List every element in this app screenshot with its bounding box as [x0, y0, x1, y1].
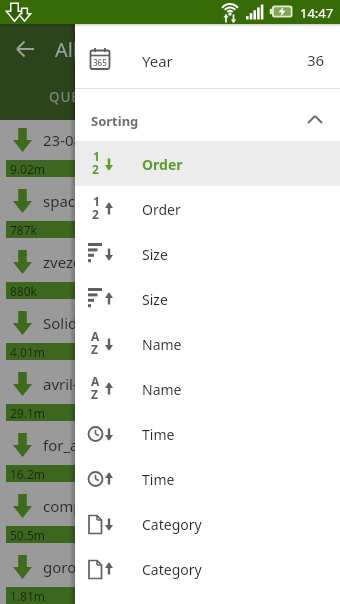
staticText: Z — [91, 341, 98, 357]
staticText: 1 — [93, 148, 100, 164]
staticText: Size — [142, 245, 168, 264]
staticText: Category — [142, 515, 202, 534]
staticText: avril-lavig — [43, 374, 111, 394]
staticText: compilatio — [43, 496, 118, 516]
staticText: Category — [142, 560, 202, 579]
staticText: 787k — [10, 222, 38, 238]
staticText: Size — [142, 290, 168, 309]
button[interactable]: 23-08-2015 — [0, 120, 340, 181]
button[interactable]: zvezda_201 — [0, 242, 340, 303]
staticText: Name — [142, 380, 182, 399]
button[interactable]: Size — [75, 276, 340, 321]
staticText: Order — [142, 155, 183, 174]
staticText: A — [91, 328, 100, 344]
button[interactable]: SolidFiles — [0, 303, 340, 364]
staticText: 365 — [93, 57, 107, 68]
staticText: 2 — [92, 206, 99, 222]
button[interactable]: for_a_reas — [0, 425, 340, 486]
staticText: 50.5m — [10, 527, 46, 543]
button[interactable]: avril-lavig — [0, 364, 340, 425]
button[interactable]: gorod_312 — [0, 547, 340, 604]
button[interactable]: 1 — [75, 186, 340, 231]
button[interactable]: 1 — [75, 141, 340, 186]
button[interactable]: A — [75, 321, 340, 366]
staticText: 16.2m — [10, 466, 46, 482]
button[interactable]: Category — [75, 546, 340, 591]
staticText: space_odys — [43, 191, 124, 211]
staticText: 4.01m — [10, 344, 46, 360]
staticText: Time — [142, 425, 175, 444]
staticText: Sorting — [91, 112, 139, 130]
staticText: 1.81m — [10, 588, 46, 604]
staticText: QUEUE — [49, 88, 99, 106]
staticText: 23-08-2015 — [43, 130, 122, 150]
staticText: All — [55, 36, 79, 63]
button[interactable]: Time — [75, 411, 340, 456]
button[interactable]: 365 — [75, 24, 340, 88]
staticText: for_a_reas — [43, 435, 116, 455]
staticText: 36 — [307, 50, 325, 70]
button[interactable]: All — [0, 24, 340, 72]
button[interactable]: Category — [75, 501, 340, 546]
button[interactable]: QUEUE — [0, 72, 340, 120]
staticText: Z — [91, 386, 98, 402]
staticText: Year — [142, 51, 173, 71]
button[interactable]: A — [75, 366, 340, 411]
button[interactable]: compilatio — [0, 486, 340, 547]
staticText: 880k — [10, 283, 38, 299]
staticText: 2 — [92, 161, 99, 177]
staticText: gorod_312 — [43, 557, 118, 577]
staticText: 14:47 — [300, 4, 334, 22]
button[interactable]: Sorting — [75, 89, 340, 141]
staticText: SolidFiles — [43, 313, 109, 333]
staticText: 9.02m — [10, 161, 46, 177]
button[interactable]: space_odys — [0, 181, 340, 242]
staticText: 1 — [93, 193, 100, 209]
staticText: Time — [142, 470, 175, 489]
staticText: zvezda_201 — [43, 252, 124, 272]
button[interactable]: Size — [75, 231, 340, 276]
button[interactable]: Time — [75, 456, 340, 501]
staticText: 29.1m — [10, 405, 46, 421]
staticText: Order — [142, 200, 181, 219]
staticText: Name — [142, 335, 182, 354]
staticText: A — [91, 373, 100, 389]
